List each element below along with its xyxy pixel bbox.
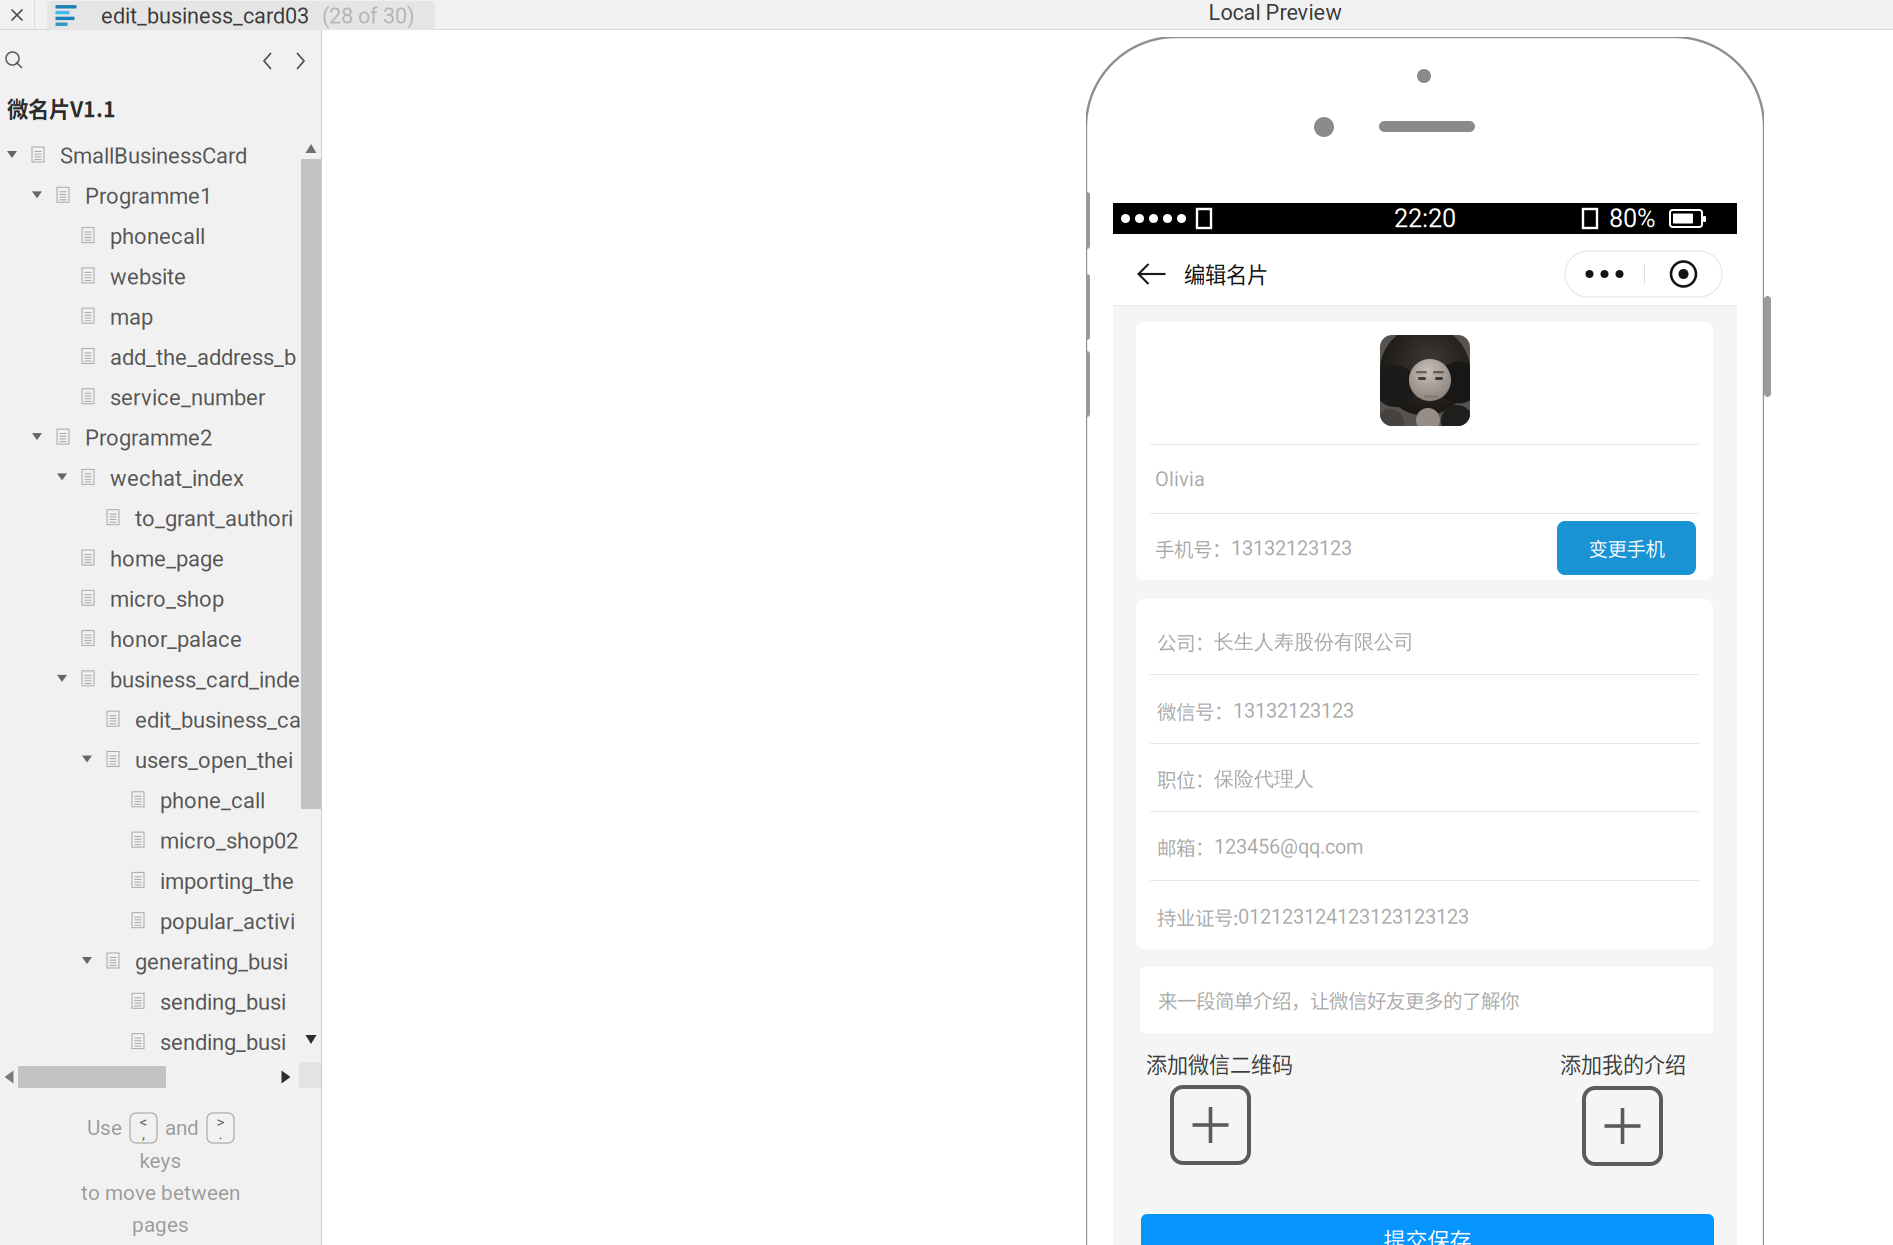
staticText: micro_shop02	[160, 828, 298, 854]
button[interactable]: popular_activi	[0, 901, 321, 941]
button[interactable]: honor_palace	[0, 619, 321, 659]
button[interactable]: 提交保存	[1141, 1214, 1714, 1245]
button[interactable]: edit_business_card03	[47, 1, 435, 30]
button[interactable]: sending_busi	[0, 1022, 321, 1062]
staticText: Use	[87, 1116, 122, 1140]
staticText: 来一段简单介绍，让微信好友更多的了解你	[1158, 986, 1519, 1014]
button[interactable]: users_open_thei	[0, 739, 321, 780]
staticText: Local Preview	[1208, 0, 1341, 25]
staticText: 公司：	[1157, 628, 1214, 656]
staticText: Programme2	[85, 425, 212, 451]
staticText: home_page	[110, 546, 224, 572]
staticText: wechat_index	[110, 465, 244, 491]
staticText: website	[110, 264, 186, 290]
staticText: 123456@qq.com	[1214, 835, 1364, 859]
button[interactable]: add_the_address_b	[0, 336, 321, 377]
button[interactable]: Next page	[296, 52, 306, 70]
staticText: 添加我的介绍	[1560, 1048, 1686, 1079]
button[interactable]: business_card_inde	[0, 659, 321, 699]
staticText: .	[218, 1125, 222, 1143]
staticText: sending_busi	[160, 1030, 286, 1055]
button[interactable]: Programme1	[0, 175, 321, 216]
staticText: 长生人寿股份有限公司	[1214, 629, 1414, 655]
staticText: honor_palace	[110, 627, 242, 652]
staticText: phonecall	[110, 224, 205, 249]
staticText: 13132123123	[1233, 699, 1354, 723]
staticText: 变更手机	[1588, 534, 1664, 562]
staticText: phone_call	[160, 788, 265, 814]
staticText: 13132123123	[1231, 537, 1352, 560]
button[interactable]: Close mini program	[1645, 251, 1722, 297]
staticText: 22:20	[1394, 204, 1456, 233]
staticText: edit_business_card03	[101, 3, 309, 29]
staticText: 80%	[1609, 204, 1656, 233]
staticText: to_grant_authori	[135, 506, 293, 532]
staticText: pages	[132, 1213, 189, 1237]
button[interactable]: SmallBusinessCard	[0, 135, 321, 175]
button[interactable]: More	[1565, 251, 1644, 297]
staticText: business_card_inde	[110, 667, 300, 693]
staticText: 提交保存	[1383, 1223, 1471, 1245]
staticText: <	[139, 1113, 147, 1131]
staticText: 手机号：	[1155, 534, 1231, 563]
button[interactable]: Close	[6, 4, 28, 26]
button[interactable]: Search	[6, 52, 24, 70]
staticText: users_open_thei	[135, 748, 293, 773]
staticText: 编辑名片	[1184, 258, 1268, 289]
staticText: 职位：	[1157, 765, 1214, 793]
button[interactable]: edit_business_ca	[0, 699, 321, 739]
button[interactable]: service_number	[0, 377, 321, 417]
button[interactable]: home_page	[0, 538, 321, 578]
staticText: generating_busi	[135, 949, 288, 975]
staticText: edit_business_ca	[135, 707, 301, 733]
staticText: >	[216, 1113, 224, 1131]
staticText: add_the_address_b	[110, 345, 296, 370]
staticText: ,	[142, 1125, 145, 1143]
staticText: to move between	[81, 1181, 240, 1205]
staticText: and	[165, 1116, 199, 1140]
button[interactable]: phonecall	[0, 216, 321, 256]
button[interactable]: to_grant_authori	[0, 498, 321, 538]
button[interactable]: micro_shop	[0, 578, 321, 619]
staticText: sending_busi	[160, 989, 286, 1015]
button[interactable]: map	[0, 296, 321, 336]
button[interactable]: website	[0, 256, 321, 296]
button[interactable]: 来一段简单介绍，让微信好友更多的了解你	[1140, 967, 1713, 1033]
button[interactable]: generating_busi	[0, 941, 321, 981]
staticText: 012123124123123123123	[1238, 905, 1469, 929]
staticText: 保险代理人	[1214, 766, 1314, 792]
button[interactable]: 添加我的介绍	[1486, 1049, 1686, 1184]
button[interactable]: Back	[1136, 263, 1167, 286]
staticText: keys	[139, 1149, 181, 1173]
button[interactable]: importing_the	[0, 860, 321, 901]
button[interactable]: phone_call	[0, 780, 321, 820]
button[interactable]: wechat_index	[0, 457, 321, 498]
button[interactable]: micro_shop02	[0, 820, 321, 860]
staticText: service_number	[110, 385, 265, 411]
staticText: 微信号：	[1157, 697, 1233, 725]
button[interactable]: Programme2	[0, 417, 321, 457]
staticText: importing_the	[160, 868, 294, 894]
staticText: 邮箱：	[1157, 833, 1214, 861]
staticText: micro_shop	[110, 586, 224, 612]
staticText: Olivia	[1155, 468, 1205, 491]
staticText: Programme1	[85, 183, 212, 209]
staticText: map	[110, 304, 153, 330]
staticText: 添加微信二维码	[1146, 1048, 1293, 1079]
button[interactable]: 添加微信二维码	[1146, 1049, 1346, 1184]
button[interactable]: 变更手机	[1557, 521, 1696, 575]
staticText: 微名片V1.1	[7, 93, 116, 123]
staticText: SmallBusinessCard	[60, 143, 247, 169]
staticText: popular_activi	[160, 909, 295, 935]
button[interactable]: sending_busi	[0, 981, 321, 1022]
button[interactable]: Previous page	[263, 52, 273, 70]
staticText: (28 of 30)	[322, 3, 415, 29]
staticText: 持业证号:	[1157, 903, 1238, 931]
